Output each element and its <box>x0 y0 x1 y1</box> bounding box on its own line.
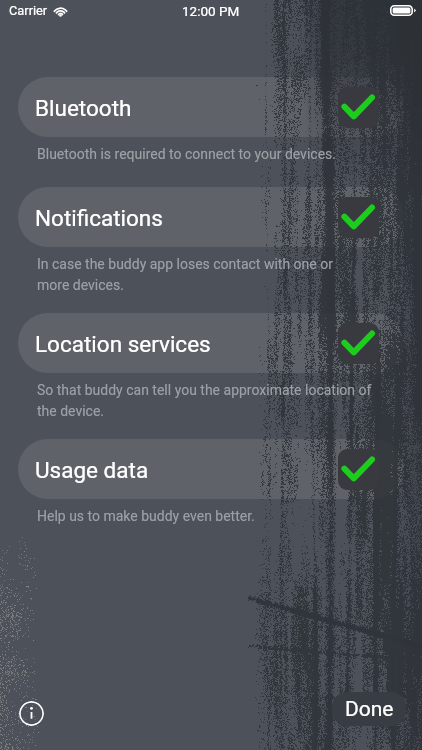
button[interactable]: Information <box>19 701 44 726</box>
staticText: Notifications <box>35 205 163 231</box>
staticText: 12:00 PM <box>182 3 240 19</box>
button[interactable]: Done <box>332 692 406 726</box>
button[interactable]: Bluetooth <box>18 77 404 137</box>
staticText: Location services <box>35 331 211 357</box>
button[interactable]: Notifications <box>18 187 404 247</box>
staticText: Bluetooth is required to connect to your… <box>37 146 417 162</box>
button[interactable]: Location services <box>18 313 404 373</box>
button[interactable]: Usage data <box>18 439 404 499</box>
staticText: Help us to make buddy even better. <box>37 508 417 524</box>
staticText: Done <box>345 697 394 722</box>
staticText: Carrier <box>9 3 48 18</box>
staticText: Usage data <box>35 457 149 483</box>
staticText: In case the buddy app loses contact with… <box>37 256 417 293</box>
staticText: So that buddy can tell you the approxima… <box>37 382 417 419</box>
staticText: Bluetooth <box>35 95 132 121</box>
